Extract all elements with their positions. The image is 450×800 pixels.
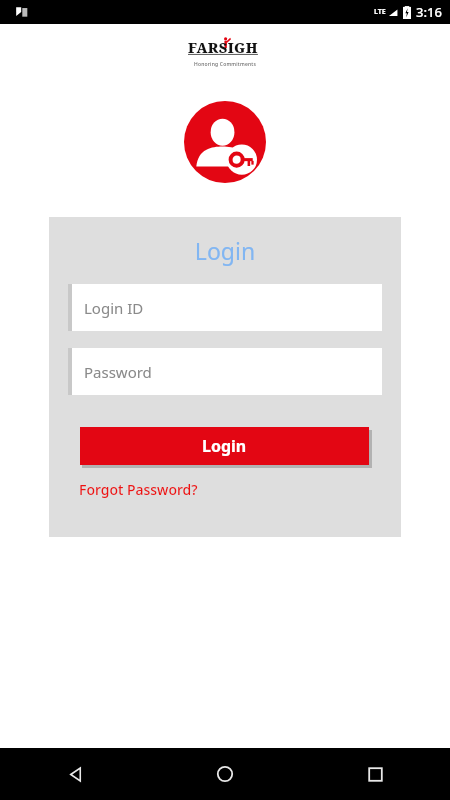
- staticText: Forgot Password?: [79, 480, 198, 499]
- button[interactable]: Back: [0, 748, 150, 800]
- staticText: Login ID: [84, 298, 144, 318]
- staticText: Honoring Commitments: [194, 61, 257, 68]
- button[interactable]: Password: [68, 348, 382, 395]
- staticText: 3:16: [416, 3, 442, 21]
- button[interactable]: Recent apps: [300, 748, 450, 800]
- staticText: Login: [202, 435, 247, 457]
- staticText: Login: [49, 235, 401, 266]
- staticText: LTE: [374, 7, 386, 17]
- button[interactable]: Forgot Password?: [79, 478, 198, 501]
- button[interactable]: Login ID: [68, 284, 382, 331]
- staticText: FARSIGHT: [188, 38, 262, 60]
- staticText: Password: [84, 362, 152, 382]
- button[interactable]: Login: [80, 427, 369, 465]
- button[interactable]: Home: [150, 748, 300, 800]
